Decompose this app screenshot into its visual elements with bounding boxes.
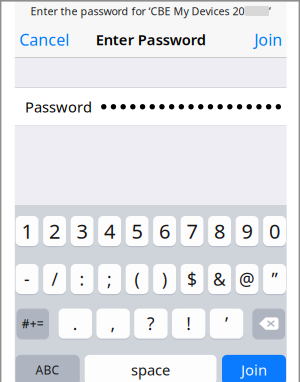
staticText: ABC	[36, 362, 60, 378]
staticText: (	[134, 267, 139, 290]
button[interactable]: ABC	[16, 355, 80, 382]
staticText: space	[131, 360, 170, 380]
staticText: 1	[21, 218, 32, 244]
staticText: ;	[107, 267, 112, 290]
button[interactable]: /	[43, 264, 66, 295]
staticText: Enter Password	[96, 30, 206, 49]
staticText: ’	[225, 312, 228, 335]
staticText: $	[187, 267, 197, 290]
staticText: 7	[186, 218, 197, 244]
button[interactable]: :	[71, 264, 93, 295]
button[interactable]: 5	[126, 216, 148, 247]
button[interactable]: ”	[263, 264, 286, 295]
staticText: 6	[159, 218, 170, 244]
staticText: 4	[104, 218, 115, 244]
staticText: Enter the password for ‘CBE My Devices 2…	[31, 4, 245, 18]
button[interactable]: 7	[181, 216, 203, 247]
staticText: ’	[269, 4, 271, 18]
button[interactable]: space	[85, 355, 217, 382]
staticText: Join	[241, 360, 267, 380]
button[interactable]: 9	[236, 216, 258, 247]
staticText: Password	[25, 97, 92, 116]
staticText: @	[239, 267, 255, 290]
button[interactable]: 2	[43, 216, 66, 247]
button[interactable]: 3	[71, 216, 93, 247]
button[interactable]: 8	[208, 216, 231, 247]
button[interactable]: Delete	[253, 309, 285, 340]
staticText: ?	[147, 312, 155, 335]
button[interactable]: 4	[98, 216, 121, 247]
button[interactable]: 1	[16, 216, 38, 247]
staticText: 9	[241, 218, 252, 244]
button[interactable]: ,	[96, 309, 130, 340]
staticText: )	[162, 267, 167, 290]
staticText: 5	[131, 218, 142, 244]
button[interactable]: ’	[210, 309, 243, 340]
button[interactable]: Join	[251, 22, 285, 57]
button[interactable]: ;	[98, 264, 121, 295]
button[interactable]: !	[172, 309, 205, 340]
button[interactable]: )	[153, 264, 176, 295]
staticText: 3	[76, 218, 87, 244]
staticText: &	[213, 267, 226, 290]
staticText: /	[51, 267, 57, 290]
staticText: 2	[49, 218, 60, 244]
button[interactable]: Join	[222, 355, 286, 382]
button[interactable]: @	[236, 264, 258, 295]
button[interactable]: (	[126, 264, 148, 295]
button[interactable]: Cancel	[16, 22, 72, 57]
staticText: 8	[214, 218, 225, 244]
staticText: -	[24, 267, 30, 290]
button[interactable]: ?	[134, 309, 168, 340]
button[interactable]: 6	[153, 216, 176, 247]
staticText: ”	[271, 267, 277, 290]
staticText: !	[186, 312, 191, 335]
button[interactable]: 0	[263, 216, 286, 247]
staticText: :	[79, 267, 84, 290]
button[interactable]: #+=	[17, 309, 49, 340]
button[interactable]: -	[16, 264, 38, 295]
staticText: ,	[111, 312, 116, 335]
staticText: #+=	[22, 316, 44, 331]
staticText: .	[73, 312, 78, 335]
button[interactable]: &	[208, 264, 231, 295]
button[interactable]: .	[58, 309, 92, 340]
staticText: 0	[269, 218, 280, 244]
button[interactable]: $	[181, 264, 203, 295]
staticText: Cancel	[19, 29, 69, 50]
staticText: Join	[254, 29, 282, 50]
